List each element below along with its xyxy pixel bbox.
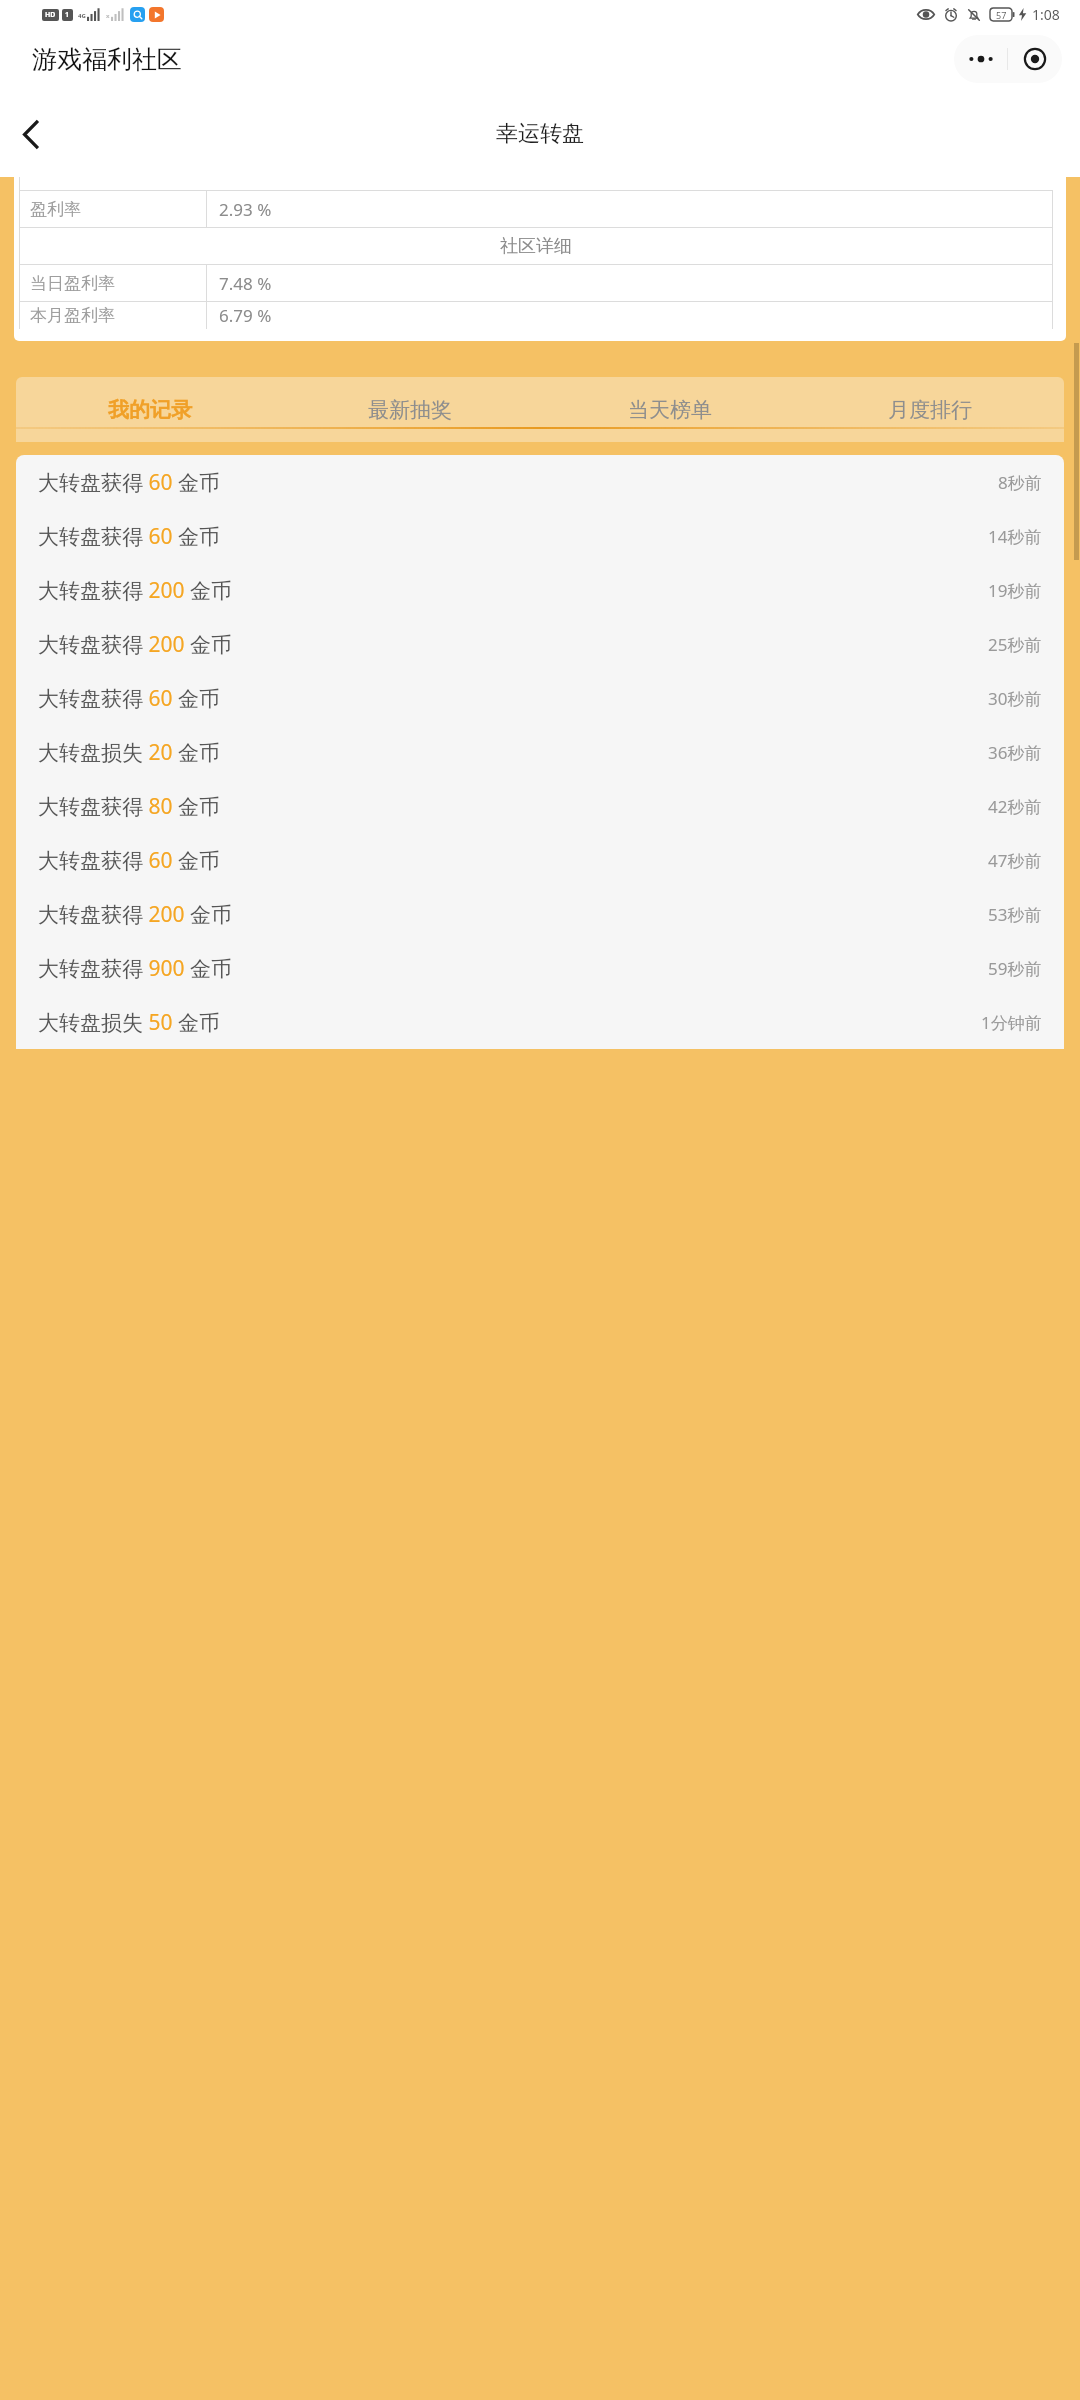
staticText: 当天榜单 <box>628 397 712 423</box>
button[interactable]: 大转盘获得 200 金币 <box>16 887 1064 941</box>
button[interactable]: 大转盘获得 60 金币 <box>16 455 1064 509</box>
button[interactable]: 大转盘获得 900 金币 <box>16 941 1064 995</box>
staticText: 大转盘获得 60 金币 <box>38 684 220 713</box>
staticText: 14秒前 <box>988 525 1042 548</box>
button[interactable]: 我的记录 <box>20 377 280 442</box>
staticText: 1:08 <box>1032 5 1060 24</box>
staticText: 月度排行 <box>888 397 972 423</box>
staticText: 36秒前 <box>988 741 1042 764</box>
staticText: 大转盘获得 60 金币 <box>38 846 220 875</box>
button[interactable]: 大转盘获得 80 金币 <box>16 779 1064 833</box>
staticText: 大转盘获得 60 金币 <box>38 468 220 497</box>
button[interactable]: 当天榜单 <box>540 377 800 442</box>
staticText: 1 <box>65 10 70 20</box>
button[interactable]: More <box>954 35 1007 83</box>
staticText: 社区详细 <box>500 235 572 258</box>
staticText: 当日盈利率 <box>30 273 115 294</box>
staticText: 7.48 % <box>219 272 272 295</box>
staticText: 游戏福利社区 <box>32 44 182 75</box>
button[interactable]: 大转盘获得 200 金币 <box>16 617 1064 671</box>
button[interactable]: 最新抽奖 <box>280 377 540 442</box>
staticText: 大转盘损失 50 金币 <box>38 1008 220 1037</box>
staticText: 30秒前 <box>988 687 1042 710</box>
button[interactable]: Back <box>0 104 60 164</box>
staticText: 大转盘获得 80 金币 <box>38 792 220 821</box>
staticText: 8秒前 <box>998 471 1042 494</box>
staticText: 59秒前 <box>988 957 1042 980</box>
button[interactable]: 大转盘获得 60 金币 <box>16 671 1064 725</box>
staticText: 25秒前 <box>988 633 1042 656</box>
staticText: 42秒前 <box>988 795 1042 818</box>
staticText: 大转盘获得 60 金币 <box>38 522 220 551</box>
staticText: 幸运转盘 <box>496 120 584 148</box>
staticText: 6.79 % <box>219 304 272 327</box>
button[interactable]: Close <box>1008 35 1062 83</box>
staticText: 大转盘损失 20 金币 <box>38 738 220 767</box>
staticText: 大转盘获得 900 金币 <box>38 954 232 983</box>
staticText: x <box>106 12 110 20</box>
button[interactable]: 大转盘损失 50 金币 <box>16 995 1064 1049</box>
button[interactable]: 月度排行 <box>800 377 1060 442</box>
staticText: 大转盘获得 200 金币 <box>38 576 232 605</box>
staticText: 19秒前 <box>988 579 1042 602</box>
staticText: 57 <box>996 9 1007 21</box>
staticText: 本月盈利率 <box>30 305 115 326</box>
staticText: 最新抽奖 <box>368 397 452 423</box>
staticText: 我的记录 <box>108 397 192 423</box>
staticText: HD <box>45 10 56 20</box>
staticText: 大转盘获得 200 金币 <box>38 630 232 659</box>
staticText: 盈利率 <box>30 199 81 220</box>
button[interactable]: 大转盘获得 200 金币 <box>16 563 1064 617</box>
staticText: 4G <box>78 12 86 20</box>
button[interactable]: 大转盘获得 60 金币 <box>16 509 1064 563</box>
staticText: 53秒前 <box>988 903 1042 926</box>
staticText: 2.93 % <box>219 198 272 221</box>
staticText: 47秒前 <box>988 849 1042 872</box>
staticText: 1分钟前 <box>981 1011 1042 1034</box>
button[interactable]: 大转盘获得 60 金币 <box>16 833 1064 887</box>
button[interactable]: 大转盘损失 20 金币 <box>16 725 1064 779</box>
staticText: 大转盘获得 200 金币 <box>38 900 232 929</box>
